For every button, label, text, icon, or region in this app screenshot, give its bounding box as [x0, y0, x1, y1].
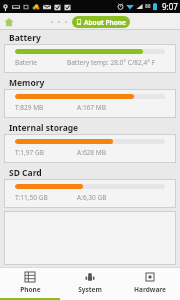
button[interactable]: Phone: [0, 268, 60, 298]
staticText: T:1,97 GB: [15, 148, 77, 157]
staticText: Battery temp: 28.0° C/82,4° F: [67, 58, 156, 67]
staticText: Battery: [9, 32, 41, 44]
staticText: Phone: [20, 285, 41, 294]
staticText: SD Card: [9, 167, 42, 179]
staticText: A:628 MB: [77, 148, 106, 157]
button[interactable]: Home: [0, 13, 17, 30]
button[interactable]: Baterie: [4, 44, 176, 73]
staticText: System: [78, 285, 102, 294]
button[interactable]: Hardware: [120, 268, 180, 298]
staticText: T:11,50 GB: [15, 193, 77, 202]
button[interactable]: T:11,50 GB: [4, 179, 176, 208]
staticText: 9:07: [162, 1, 178, 12]
staticText: Baterie: [15, 58, 67, 67]
staticText: A:6,30 GB: [77, 193, 107, 202]
staticText: A:167 MB: [77, 103, 106, 112]
button[interactable]: T:829 MB: [4, 89, 176, 118]
staticText: T:829 MB: [15, 103, 77, 112]
staticText: Hardware: [134, 285, 166, 294]
button[interactable]: T:1,97 GB: [4, 134, 176, 163]
button[interactable]: System: [60, 268, 120, 298]
staticText: About Phone: [84, 18, 126, 27]
staticText: Memory: [9, 77, 45, 89]
staticText: 86: [145, 3, 151, 10]
button[interactable]: About Phone: [72, 16, 130, 28]
staticText: Internal storage: [9, 122, 79, 134]
